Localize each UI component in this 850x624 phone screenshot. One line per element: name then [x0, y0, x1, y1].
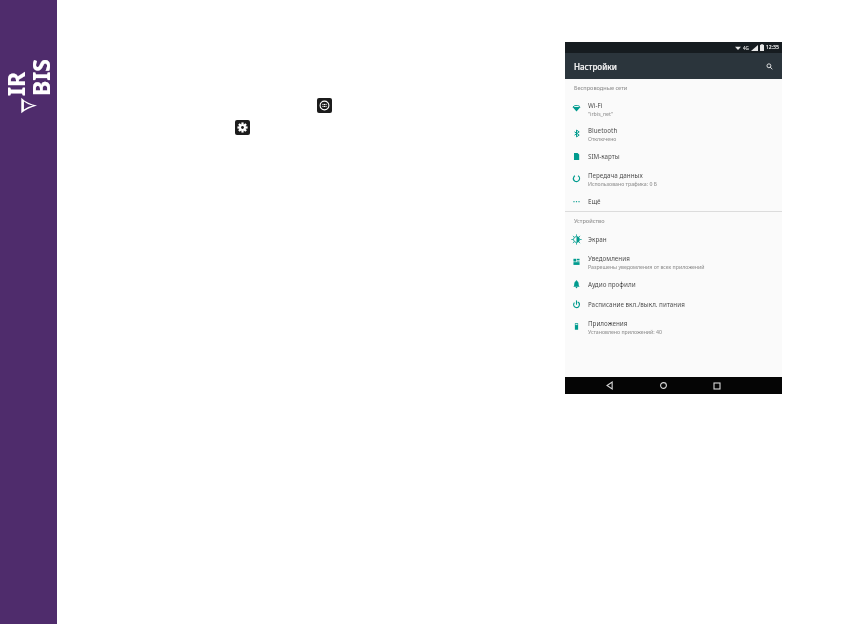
- staticText: 4G: [743, 45, 749, 51]
- button[interactable]: Экран: [565, 229, 782, 249]
- button[interactable]: Приложения: [565, 314, 782, 339]
- staticText: Отключено: [588, 135, 617, 142]
- button[interactable]: Wi-Fi: [565, 96, 782, 121]
- button[interactable]: Home: [653, 377, 673, 394]
- staticText: Ещё: [588, 197, 601, 205]
- staticText: Передача данных: [588, 171, 643, 179]
- staticText: Устройство: [574, 217, 605, 225]
- staticText: Беспроводные сети: [574, 84, 628, 92]
- button[interactable]: Аудио профили: [565, 274, 782, 294]
- staticText: Разрешены уведомления от всех приложений: [588, 263, 705, 270]
- staticText: Аудио профили: [588, 280, 636, 288]
- button[interactable]: Расписание вкл./выкл. питания: [565, 294, 782, 314]
- button[interactable]: Recent apps: [707, 377, 727, 394]
- staticText: Bluetooth: [588, 126, 618, 134]
- staticText: Настройки: [574, 61, 617, 72]
- button[interactable]: Ещё: [565, 191, 782, 211]
- button[interactable]: Back: [599, 377, 619, 394]
- staticText: 12:35: [766, 44, 779, 51]
- staticText: IRBIS: [0, 57, 57, 96]
- button[interactable]: All apps: [317, 98, 332, 113]
- button[interactable]: Settings: [235, 120, 250, 135]
- staticText: SIM-карты: [588, 152, 620, 160]
- button[interactable]: Bluetooth: [565, 121, 782, 146]
- staticText: Wi-Fi: [588, 101, 603, 109]
- staticText: "irbis_net": [588, 110, 614, 117]
- staticText: Экран: [588, 235, 607, 243]
- button[interactable]: SIM-карты: [565, 146, 782, 166]
- staticText: Приложения: [588, 319, 628, 327]
- staticText: Уведомления: [588, 254, 630, 262]
- staticText: Использовано трафика: 0 Б: [588, 180, 657, 187]
- button[interactable]: Search: [762, 59, 776, 73]
- staticText: Установлено приложений: 40: [588, 328, 662, 335]
- button[interactable]: Уведомления: [565, 249, 782, 274]
- staticText: Расписание вкл./выкл. питания: [588, 300, 685, 308]
- button[interactable]: Передача данных: [565, 166, 782, 191]
